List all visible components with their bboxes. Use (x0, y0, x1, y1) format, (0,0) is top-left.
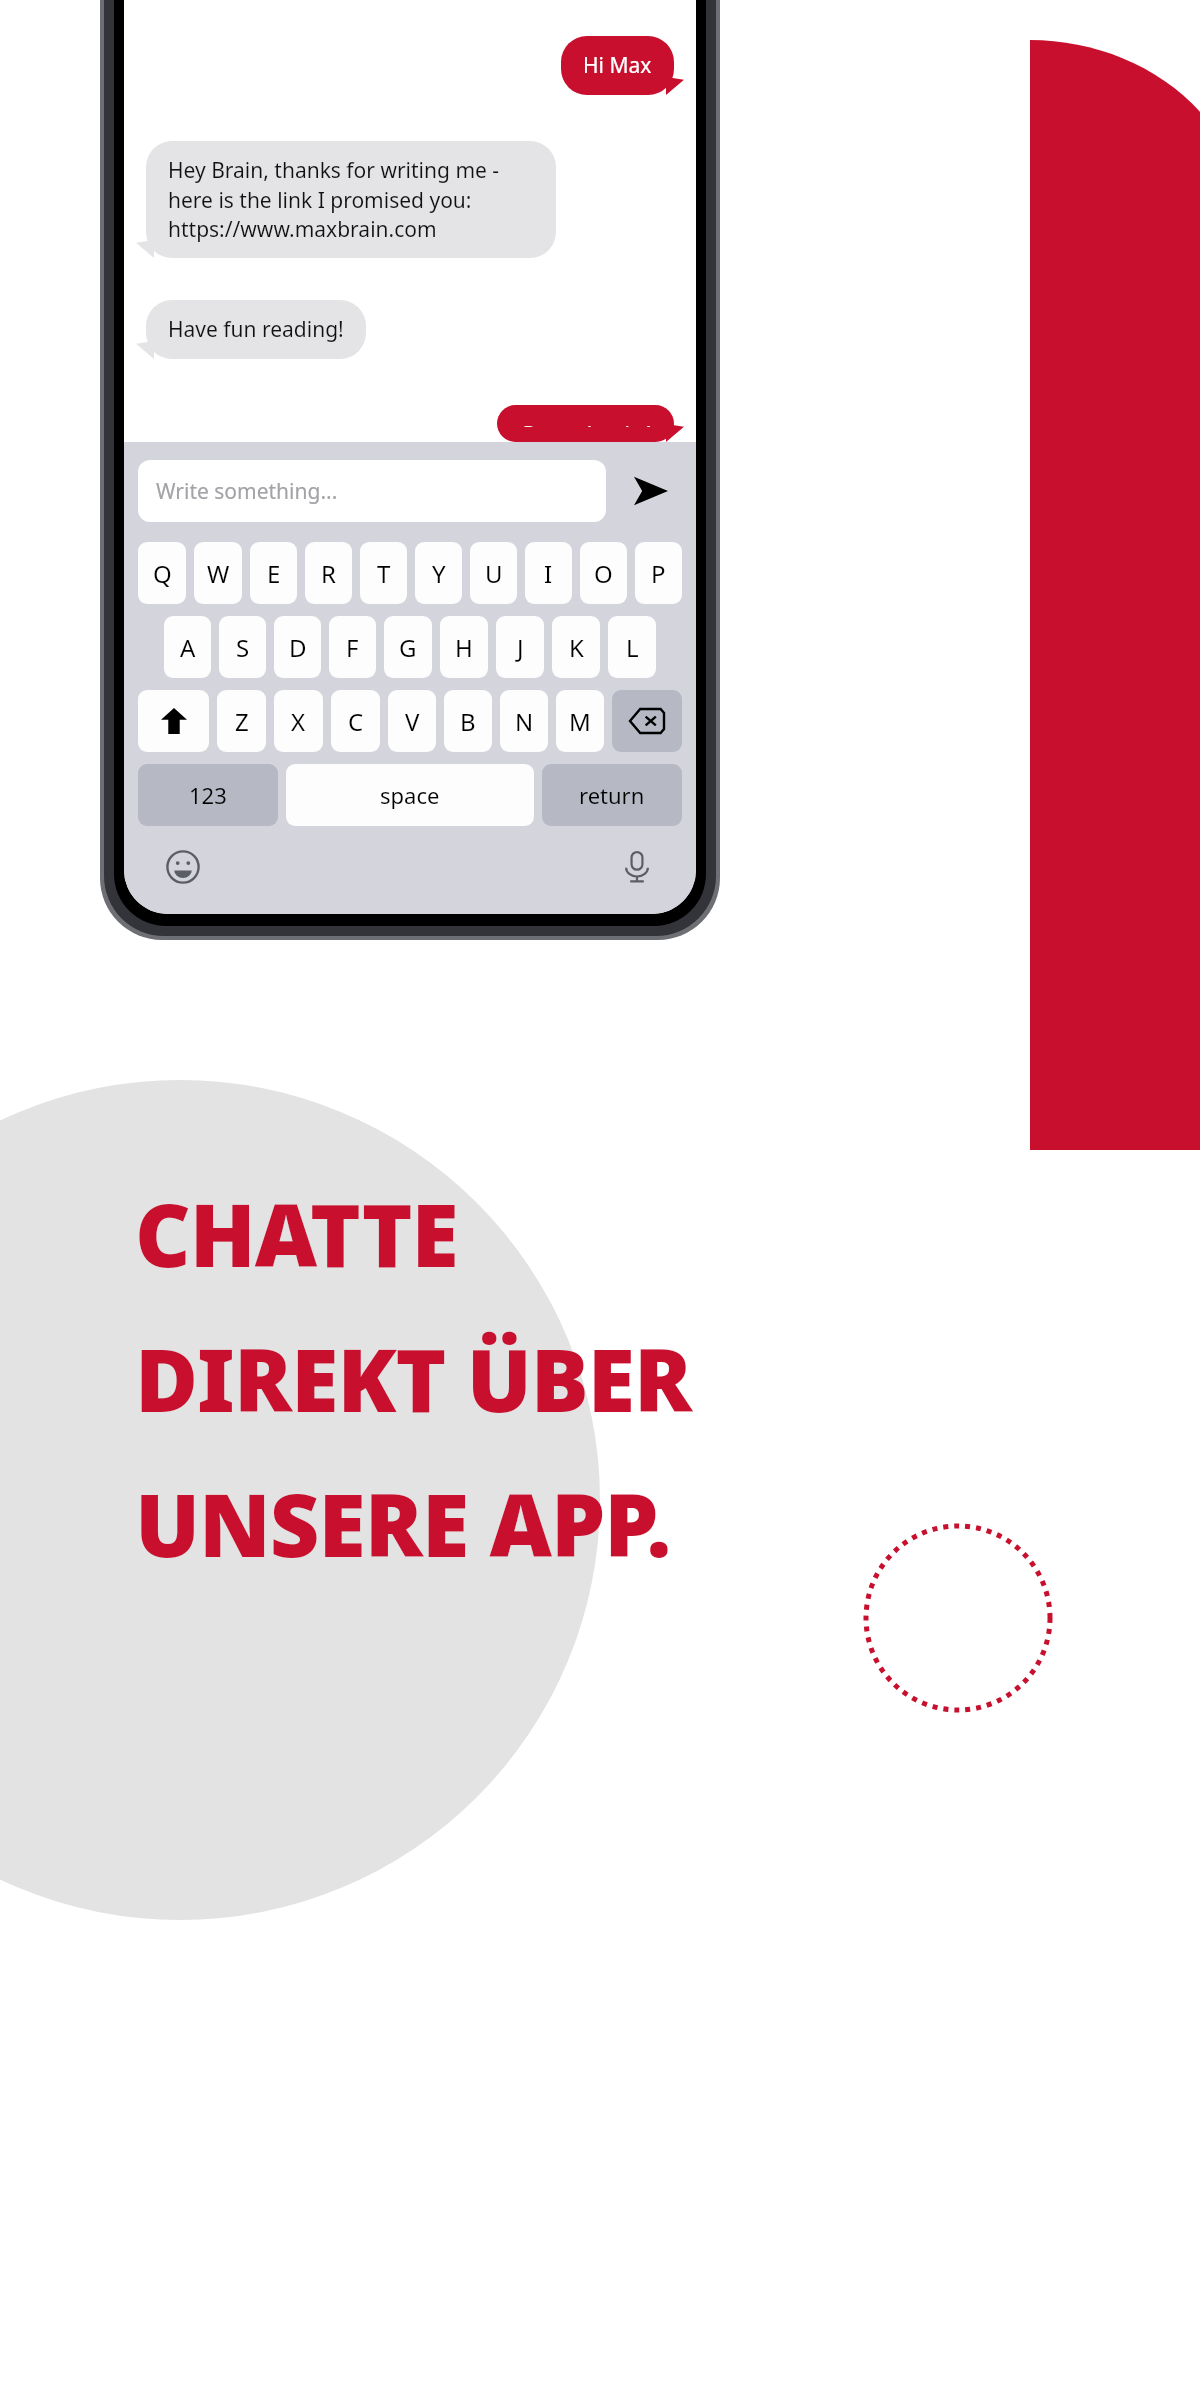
staticText: W (207, 557, 230, 590)
button[interactable]: 123 (138, 764, 278, 826)
staticText: Y (432, 557, 446, 590)
button[interactable]: space (286, 764, 534, 826)
staticText: C (348, 705, 364, 738)
staticText: I (544, 557, 553, 590)
button[interactable]: Write something... (138, 460, 606, 522)
staticText: A (180, 631, 196, 664)
staticText: X (291, 705, 306, 738)
staticText: DIREKT ÜBER (135, 1320, 692, 1437)
button[interactable]: N (500, 690, 548, 752)
button[interactable]: Backspace (612, 690, 682, 752)
button[interactable]: X (274, 690, 323, 752)
button[interactable]: Hi Max (561, 36, 674, 95)
staticText: space (380, 780, 440, 810)
staticText: R (321, 557, 336, 590)
staticText: Hey Brain, thanks for writing me - here … (168, 156, 534, 243)
staticText: T (377, 557, 391, 590)
staticText: N (515, 705, 534, 738)
staticText: D (289, 631, 307, 664)
button[interactable]: T (360, 542, 407, 604)
button[interactable]: B (444, 690, 492, 752)
staticText: E (267, 557, 281, 590)
button[interactable]: Q (138, 542, 186, 604)
button[interactable]: Y (415, 542, 462, 604)
button[interactable]: V (388, 690, 436, 752)
staticText: V (405, 705, 420, 738)
button[interactable]: W (194, 542, 242, 604)
button[interactable]: C (331, 690, 380, 752)
staticText: G (399, 631, 417, 664)
button[interactable]: H (440, 616, 488, 678)
button[interactable]: Hey Brain, thanks for writing me - here … (146, 141, 556, 258)
staticText: S (236, 631, 250, 664)
button[interactable]: S (219, 616, 266, 678)
staticText: O (594, 557, 613, 590)
staticText: return (579, 780, 645, 810)
button[interactable]: I (525, 542, 572, 604)
button[interactable]: Great thanks! (497, 405, 674, 442)
button[interactable]: L (608, 616, 656, 678)
button[interactable]: J (496, 616, 544, 678)
button[interactable]: A (164, 616, 211, 678)
button[interactable]: Shift (138, 690, 209, 752)
staticText: UNSERE APP. (135, 1465, 671, 1582)
staticText: Write something... (156, 477, 338, 506)
staticText: M (569, 705, 591, 738)
staticText: Have fun reading! (168, 315, 344, 344)
button[interactable]: R (305, 542, 352, 604)
button[interactable]: G (384, 616, 432, 678)
staticText: Great thanks! (519, 420, 652, 427)
staticText: L (626, 631, 639, 664)
button[interactable]: K (552, 616, 600, 678)
staticText: K (569, 631, 584, 664)
button[interactable]: Z (217, 690, 266, 752)
staticText: Q (153, 557, 172, 590)
staticText: H (455, 631, 473, 664)
staticText: Hi Max (583, 51, 652, 80)
staticText: P (651, 557, 666, 590)
staticText: CHATTE (135, 1175, 458, 1292)
button[interactable]: E (250, 542, 297, 604)
staticText: Z (235, 705, 249, 738)
staticText: J (517, 631, 524, 664)
button[interactable]: M (556, 690, 604, 752)
button[interactable]: U (470, 542, 517, 604)
staticText: F (346, 631, 359, 664)
button[interactable]: O (580, 542, 627, 604)
button[interactable]: return (542, 764, 682, 826)
button[interactable]: Voice input (610, 840, 664, 894)
button[interactable]: Send (620, 460, 682, 522)
button[interactable]: Emoji (156, 840, 210, 894)
button[interactable]: F (329, 616, 376, 678)
staticText: B (460, 705, 476, 738)
button[interactable]: D (274, 616, 321, 678)
staticText: U (485, 557, 503, 590)
button[interactable]: Have fun reading! (146, 300, 366, 359)
staticText: 123 (189, 780, 227, 810)
button[interactable]: P (635, 542, 682, 604)
